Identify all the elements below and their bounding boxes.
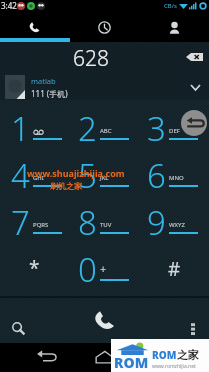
button[interactable]: Home xyxy=(95,350,114,364)
button[interactable]: Call xyxy=(69,296,139,343)
button[interactable]: 9 xyxy=(139,198,209,245)
staticText: 5 xyxy=(78,153,97,198)
staticText: DEF xyxy=(169,127,180,135)
staticText: 刷机之家 xyxy=(50,181,82,191)
button[interactable]: Search xyxy=(0,296,69,343)
staticText: JKL xyxy=(100,174,109,182)
staticText: www.romzhijia.net xyxy=(152,363,196,370)
button[interactable]: Recents xyxy=(158,351,171,364)
staticText: www.shuajizhijia.com xyxy=(27,167,125,179)
staticText: 6 xyxy=(147,153,166,198)
staticText: TUV xyxy=(100,221,112,229)
staticText: + xyxy=(100,261,107,276)
button[interactable]: 1 xyxy=(0,105,69,151)
staticText: 7 xyxy=(11,200,30,245)
staticText: ROM xyxy=(114,353,149,372)
button[interactable]: * xyxy=(0,245,69,292)
button[interactable]: 8 xyxy=(69,198,139,245)
staticText: MNO xyxy=(169,174,184,182)
button[interactable]: # xyxy=(139,245,209,292)
staticText: GHI xyxy=(33,174,44,182)
button[interactable]: Expand xyxy=(184,74,206,96)
button[interactable]: Backspace xyxy=(185,52,203,62)
staticText: 3 xyxy=(147,106,166,151)
staticText: 4 xyxy=(11,153,30,198)
staticText: 8 xyxy=(78,200,97,245)
button[interactable]: 628 xyxy=(0,42,181,70)
button[interactable]: Back xyxy=(37,350,57,363)
staticText: 111 (手机) xyxy=(31,88,68,99)
button[interactable]: Dialer xyxy=(0,11,69,38)
button[interactable]: 2 xyxy=(69,105,139,151)
staticText: 1 xyxy=(11,106,30,151)
button[interactable]: matlab xyxy=(0,70,209,100)
staticText: CB/s xyxy=(164,2,177,10)
staticText: 之家 xyxy=(177,348,199,362)
staticText: 3:42 xyxy=(1,0,17,11)
button[interactable]: 5 xyxy=(69,151,139,198)
button[interactable]: 3 xyxy=(139,105,209,151)
staticText: ABC xyxy=(100,127,112,135)
button[interactable]: 0 xyxy=(69,245,139,292)
staticText: 628 xyxy=(73,44,109,72)
button[interactable]: More options xyxy=(139,296,209,343)
staticText: 0 xyxy=(78,247,97,292)
staticText: PQRS xyxy=(33,221,49,229)
staticText: # xyxy=(168,256,181,282)
staticText: ROM xyxy=(152,348,177,362)
staticText: matlab xyxy=(31,76,56,86)
staticText: 2 xyxy=(78,106,97,151)
staticText: 9 xyxy=(147,200,166,245)
button[interactable]: Contacts xyxy=(139,11,209,38)
staticText: * xyxy=(29,255,40,281)
button[interactable]: 4 xyxy=(0,151,69,198)
staticText: WXYZ xyxy=(169,221,185,229)
button[interactable]: Call history xyxy=(69,11,139,38)
button[interactable]: 6 xyxy=(139,151,209,198)
button[interactable]: 7 xyxy=(0,198,69,245)
